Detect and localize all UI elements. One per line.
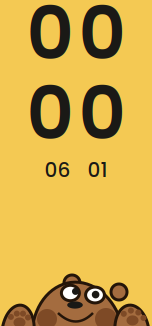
staticText: 0 (78, 0, 125, 84)
staticText: 06 (44, 156, 70, 184)
staticText: 0 (26, 62, 73, 164)
staticText: 01 (87, 156, 107, 184)
staticText: 0 (78, 62, 125, 164)
staticText: 0 (26, 0, 73, 84)
